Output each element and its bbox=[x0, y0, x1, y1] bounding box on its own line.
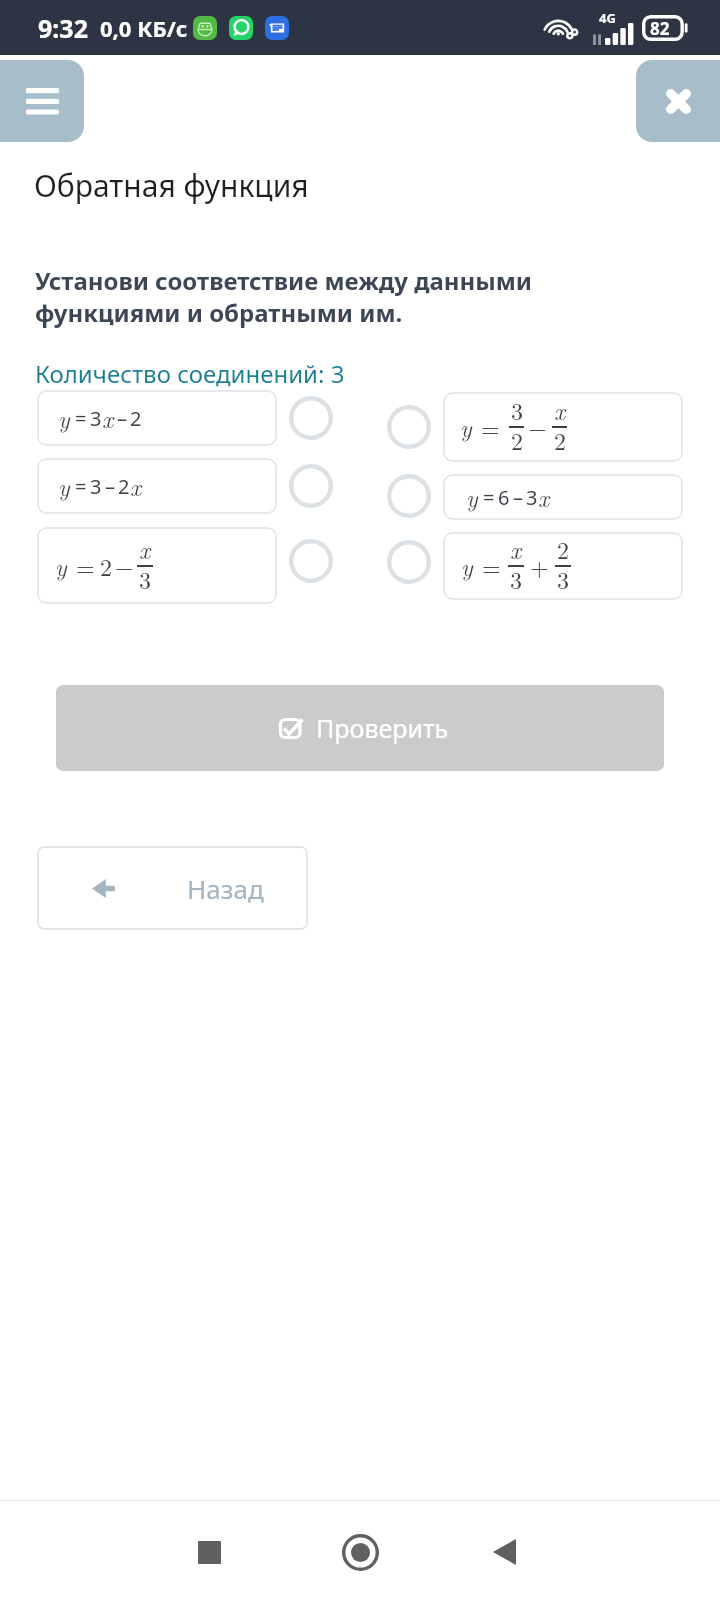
staticText: Количество соединений: 3 bbox=[35, 357, 345, 390]
staticText: y bbox=[55, 549, 67, 583]
staticText: y bbox=[58, 401, 70, 435]
staticText: 3 bbox=[139, 562, 151, 596]
staticText: – bbox=[105, 473, 115, 500]
staticText: Назад bbox=[187, 871, 264, 906]
staticText: 3 bbox=[510, 562, 522, 596]
staticText: x bbox=[130, 469, 142, 503]
staticText: 82 bbox=[650, 17, 670, 40]
staticText: x bbox=[538, 480, 550, 514]
staticText: Проверить bbox=[316, 711, 449, 745]
staticText: 3 bbox=[557, 562, 569, 596]
button[interactable]: y bbox=[37, 390, 277, 446]
staticText: = bbox=[481, 410, 500, 444]
staticText: 3 bbox=[526, 484, 538, 511]
staticText: 2 bbox=[554, 423, 566, 457]
button[interactable]: y bbox=[443, 392, 683, 462]
staticText: 2 bbox=[100, 549, 112, 583]
staticText: y bbox=[58, 469, 70, 503]
staticText: 3 bbox=[511, 393, 523, 427]
button[interactable]: Домой bbox=[310, 1502, 410, 1600]
button[interactable]: Назад bbox=[37, 846, 308, 930]
staticText: y bbox=[460, 410, 472, 444]
staticText: = bbox=[75, 473, 87, 500]
staticText: 2 bbox=[130, 405, 142, 432]
staticText: 2 bbox=[557, 532, 569, 566]
staticText: x bbox=[510, 532, 522, 566]
button[interactable]: Соединить bbox=[287, 394, 335, 442]
staticText: x bbox=[102, 401, 114, 435]
button[interactable]: y bbox=[37, 458, 277, 514]
staticText: 4G bbox=[599, 9, 616, 27]
staticText: = bbox=[75, 405, 87, 432]
staticText: 3 bbox=[90, 473, 102, 500]
staticText: 2 bbox=[118, 473, 130, 500]
staticText: + bbox=[530, 549, 549, 583]
button[interactable]: Соединить bbox=[385, 472, 433, 520]
staticText: 6 bbox=[498, 484, 510, 511]
staticText: = bbox=[76, 549, 95, 583]
button[interactable]: y bbox=[443, 474, 683, 520]
button[interactable]: Соединить bbox=[385, 538, 433, 586]
staticText: 2 bbox=[511, 423, 523, 457]
staticText: – bbox=[513, 484, 523, 511]
button[interactable]: Последние приложения bbox=[159, 1502, 259, 1600]
staticText: 0,0 КБ/c bbox=[100, 13, 188, 43]
staticText: = bbox=[483, 484, 495, 511]
staticText: = bbox=[482, 549, 501, 583]
staticText: y bbox=[466, 480, 478, 514]
button[interactable]: Соединить bbox=[287, 537, 335, 585]
staticText: Установи соответствие между данными функ… bbox=[35, 264, 533, 329]
button[interactable]: y bbox=[443, 532, 683, 600]
staticText: – bbox=[117, 405, 127, 432]
staticText: x bbox=[139, 532, 151, 566]
staticText: 3 bbox=[90, 405, 102, 432]
button[interactable]: Меню bbox=[0, 60, 84, 142]
staticText: − bbox=[528, 410, 547, 444]
button[interactable]: Назад bbox=[454, 1502, 554, 1600]
button[interactable]: Соединить bbox=[385, 403, 433, 451]
staticText: y bbox=[461, 549, 473, 583]
staticText: x bbox=[554, 393, 566, 427]
staticText: − bbox=[115, 549, 134, 583]
staticText: Обратная функция bbox=[34, 165, 309, 206]
button[interactable]: Соединить bbox=[287, 462, 335, 510]
button[interactable]: Закрыть bbox=[636, 60, 720, 142]
button[interactable]: Проверить bbox=[56, 685, 664, 771]
button[interactable]: y bbox=[37, 527, 277, 604]
staticText: 9:32 bbox=[38, 11, 88, 45]
